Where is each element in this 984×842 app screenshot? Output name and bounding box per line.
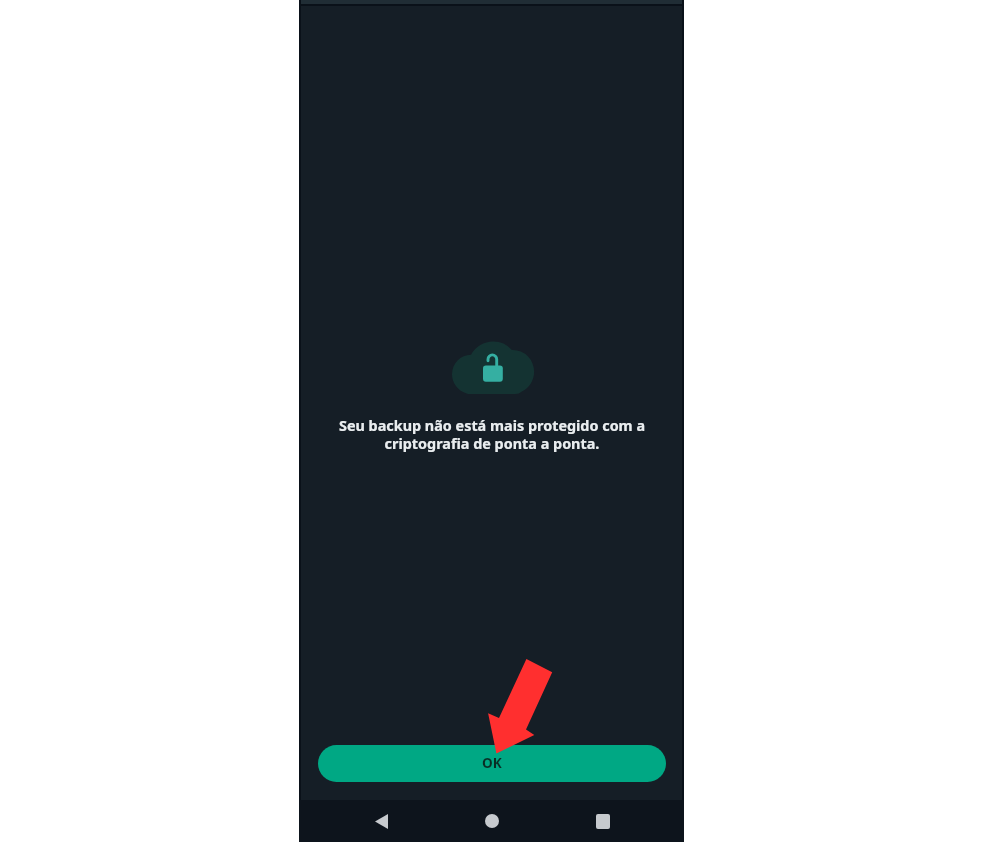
staticText: Seu backup não está mais protegido com a…	[335, 416, 649, 453]
staticText: OK	[482, 753, 502, 772]
button[interactable]: Home	[472, 801, 512, 841]
button[interactable]: Recent apps	[583, 801, 623, 841]
button[interactable]: Back	[361, 801, 401, 841]
button[interactable]: OK	[318, 745, 666, 782]
